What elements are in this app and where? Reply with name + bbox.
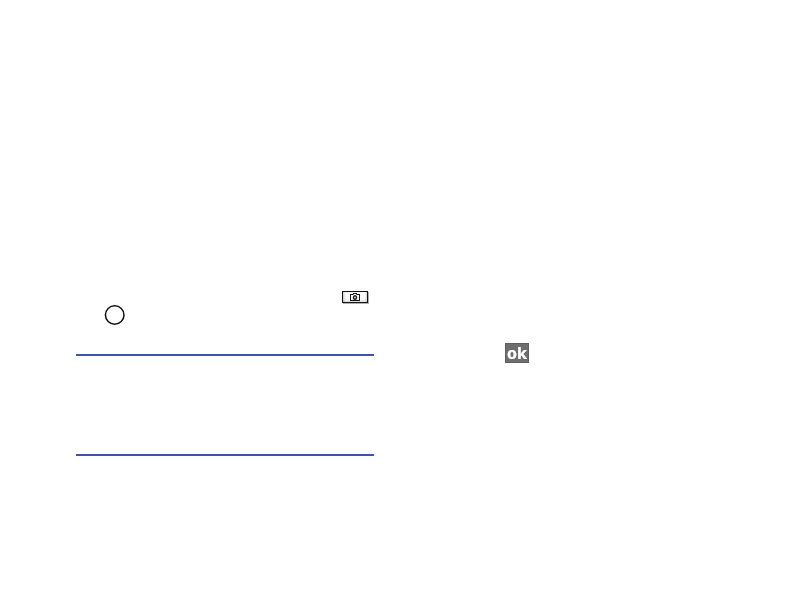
button[interactable]: Take photo	[340, 288, 370, 306]
button[interactable]: ok	[505, 343, 529, 363]
staticText: ok	[507, 342, 527, 362]
button[interactable]: Select option	[104, 304, 126, 326]
